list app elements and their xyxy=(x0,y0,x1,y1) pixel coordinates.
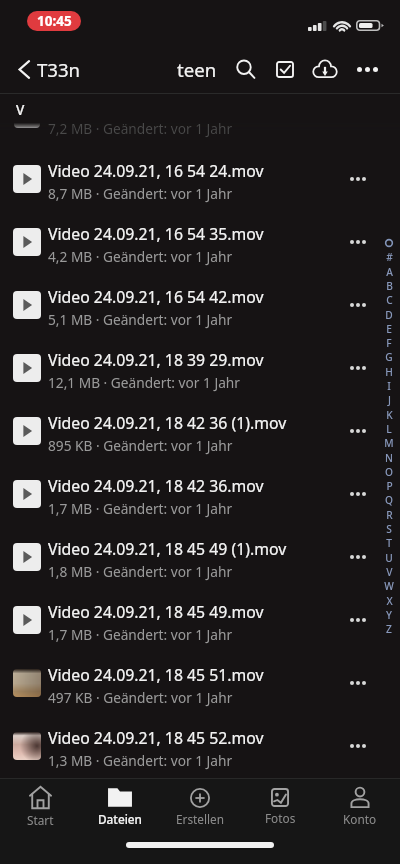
staticText: 5,1 MB · Geändert: vor 1 Jahr xyxy=(48,310,233,329)
staticText: 4,2 MB · Geändert: vor 1 Jahr xyxy=(48,247,233,266)
staticText: N xyxy=(385,451,393,465)
button[interactable]: Start xyxy=(0,779,80,834)
staticText: 497 KB · Geändert: vor 1 Jahr xyxy=(48,688,233,707)
button[interactable]: Video 24.09.21, 16 54 42.mov xyxy=(0,273,400,336)
button[interactable]: Video 24.09.21, 18 45 52.mov xyxy=(0,714,400,777)
staticText: R xyxy=(386,508,393,522)
staticText: Video 24.09.21, 18 42 36 (1).mov xyxy=(48,412,287,434)
staticText: Erstellen xyxy=(176,811,225,827)
staticText: 7,2 MB · Geändert: vor 1 Jahr xyxy=(48,119,233,138)
button[interactable]: More options xyxy=(338,474,378,514)
staticText: Q xyxy=(385,493,393,507)
staticText: Video 24.09.21, 18 39 29.mov xyxy=(48,349,264,371)
staticText: Video 24.09.21, 18 45 51.mov xyxy=(48,664,264,686)
staticText: 10:45 xyxy=(37,12,72,30)
button[interactable]: More options xyxy=(338,663,378,703)
staticText: Z xyxy=(386,622,392,636)
staticText: K xyxy=(386,408,393,422)
button[interactable]: Video 24.09.21, 18 39 29.mov xyxy=(0,336,400,399)
staticText: V xyxy=(386,565,393,579)
staticText: Start xyxy=(27,812,54,828)
staticText: G xyxy=(385,350,393,364)
button[interactable]: More options xyxy=(338,348,378,388)
button[interactable]: Video 24.09.21, 18 42 36.mov xyxy=(0,462,400,525)
button[interactable]: Video 24.09.21, 18 45 51.mov xyxy=(0,651,400,714)
button[interactable]: More options xyxy=(338,285,378,325)
button[interactable]: Video 24.09.21, 16 54 24.mov xyxy=(0,147,400,210)
button[interactable]: Konto xyxy=(320,779,400,834)
staticText: teen xyxy=(177,57,217,82)
staticText: C xyxy=(386,293,393,307)
staticText: Video 24.09.21, 16 54 42.mov xyxy=(48,286,264,308)
button[interactable]: More options xyxy=(348,45,386,93)
button[interactable]: Video 24.09.21, 18 45 49 (1).mov xyxy=(0,525,400,588)
staticText: T33n xyxy=(37,57,81,82)
staticText: D xyxy=(385,308,393,322)
staticText: 1,3 MB · Geändert: vor 1 Jahr xyxy=(48,751,233,770)
button[interactable]: Dateien xyxy=(80,779,160,834)
staticText: Video 24.09.21, 18 45 49.mov xyxy=(48,601,264,623)
staticText: U xyxy=(385,551,393,565)
button[interactable]: Erstellen xyxy=(160,779,240,834)
staticText: Video 24.09.21, 16 54 24.mov xyxy=(48,160,264,182)
button[interactable]: Download xyxy=(306,45,344,93)
button[interactable]: teen xyxy=(172,45,222,93)
button[interactable]: More options xyxy=(338,726,378,766)
staticText: Video 24.09.21, 18 45 49 (1).mov xyxy=(48,538,287,560)
staticText: S xyxy=(386,522,392,536)
button[interactable]: More options xyxy=(338,222,378,262)
staticText: H xyxy=(385,365,393,379)
staticText: # xyxy=(386,250,393,264)
button[interactable]: More options xyxy=(338,159,378,199)
staticText: T xyxy=(386,536,392,550)
staticText: F xyxy=(386,336,392,350)
staticText: Video 24.09.21, 18 42 36.mov xyxy=(48,475,264,497)
button[interactable]: More options xyxy=(338,411,378,451)
staticText: Konto xyxy=(343,811,377,827)
staticText: E xyxy=(386,322,392,336)
staticText: Y xyxy=(386,608,392,622)
staticText: X xyxy=(386,594,393,608)
button[interactable]: Select xyxy=(266,45,304,93)
button[interactable]: Video 24.09.21, 18 45 49.mov xyxy=(0,588,400,651)
button[interactable]: Video 24.09.21, 18 42 36 (1).mov xyxy=(0,399,400,462)
staticText: O xyxy=(385,465,393,479)
staticText: A xyxy=(386,265,393,279)
button[interactable]: T33n xyxy=(12,45,91,93)
staticText: 12,1 MB · Geändert: vor 1 Jahr xyxy=(48,373,240,392)
staticText: B xyxy=(386,279,393,293)
staticText: W xyxy=(384,579,394,593)
staticText: 895 KB · Geändert: vor 1 Jahr xyxy=(48,436,233,455)
staticText: M xyxy=(384,436,394,450)
staticText: 1,7 MB · Geändert: vor 1 Jahr xyxy=(48,625,233,644)
staticText: Video 24.09.21, 16 54 35.mov xyxy=(48,223,264,245)
staticText: Dateien xyxy=(98,811,143,827)
button[interactable]: Search xyxy=(226,45,264,93)
staticText: Fotos xyxy=(265,810,296,826)
staticText: Video 24.09.21, 18 45 52.mov xyxy=(48,727,264,749)
staticText: L xyxy=(386,422,392,436)
button[interactable]: More options xyxy=(338,537,378,577)
staticText: P xyxy=(386,479,393,493)
staticText: J xyxy=(388,393,391,407)
staticText: 1,7 MB · Geändert: vor 1 Jahr xyxy=(48,499,233,518)
button[interactable]: Fotos xyxy=(240,779,320,834)
staticText: 1,8 MB · Geändert: vor 1 Jahr xyxy=(48,562,233,581)
staticText: I xyxy=(387,379,391,393)
staticText: 8,7 MB · Geändert: vor 1 Jahr xyxy=(48,184,233,203)
button[interactable]: Video 24.09.21, 16 54 35.mov xyxy=(0,210,400,273)
button[interactable]: More options xyxy=(338,600,378,640)
staticText: V xyxy=(16,101,25,119)
